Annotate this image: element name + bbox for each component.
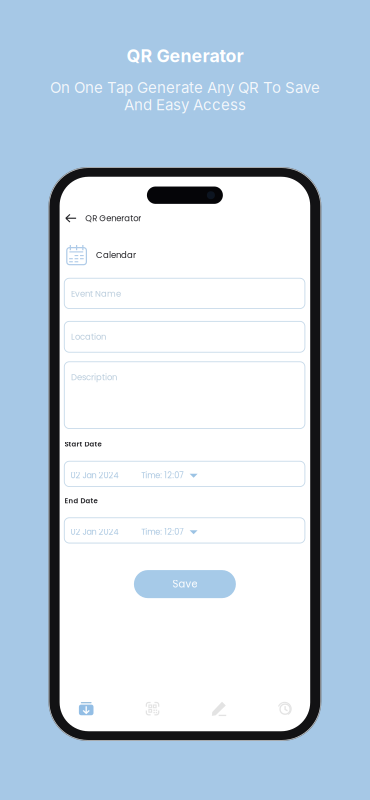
button[interactable]: Back to QR Generator <box>65 210 141 226</box>
staticText: Location <box>71 331 106 343</box>
staticText: Time: 12:07 <box>141 526 183 537</box>
staticText: Description <box>71 371 117 383</box>
button[interactable]: History <box>278 702 291 715</box>
staticText: 02 Jan 2024 <box>70 470 118 481</box>
button[interactable]: Save <box>134 570 236 598</box>
button[interactable]: Create code <box>212 701 226 716</box>
staticText: Event Name <box>71 288 121 300</box>
button[interactable]: Scan QR code <box>146 702 159 715</box>
button[interactable]: Saved codes <box>79 702 93 715</box>
staticText: And Easy Access <box>124 96 246 114</box>
staticText: Save <box>172 577 197 591</box>
staticText: Time: 12:07 <box>141 470 183 481</box>
staticText: Start Date <box>65 439 102 449</box>
staticText: QR Generator <box>126 45 243 67</box>
staticText: Calendar <box>96 249 136 261</box>
staticText: 02 Jan 2024 <box>70 526 118 537</box>
staticText: On One Tap Generate Any QR To Save <box>50 78 320 96</box>
staticText: QR Generator <box>85 212 141 224</box>
staticText: End Date <box>65 496 98 505</box>
